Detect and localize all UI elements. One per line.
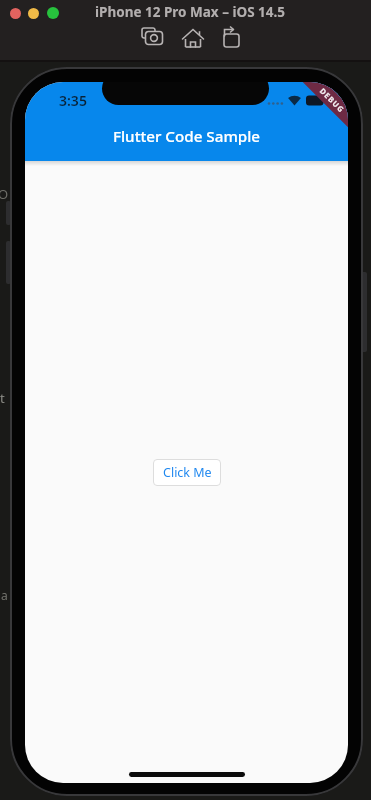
staticText: Flutter Code Sample <box>113 126 261 147</box>
button[interactable] <box>28 8 39 19</box>
staticText: O <box>0 185 9 203</box>
staticText: t <box>0 389 5 407</box>
staticText: 3:35 <box>59 91 87 110</box>
staticText: Click Me <box>163 464 212 481</box>
button[interactable] <box>140 26 245 50</box>
staticText: DEBUG <box>318 86 347 115</box>
staticText: a <box>1 587 8 603</box>
button[interactable]: Click Me <box>153 459 221 486</box>
button[interactable] <box>47 7 59 19</box>
staticText: iPhone 12 Pro Max – iOS 14.5 <box>95 3 286 21</box>
button[interactable] <box>10 8 21 19</box>
